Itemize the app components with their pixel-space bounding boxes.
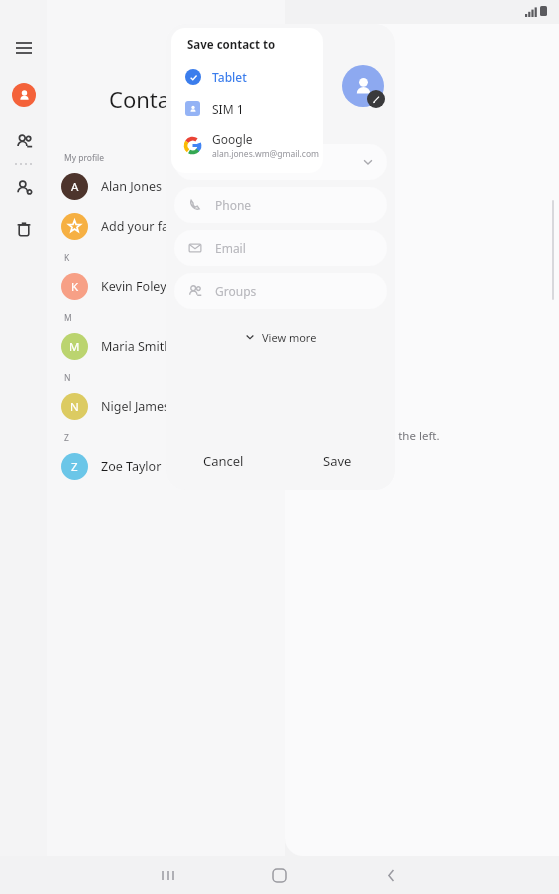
- staticText: Conta: [109, 84, 171, 114]
- staticText: My profile: [64, 152, 105, 164]
- button[interactable]: SIM 1: [171, 92, 323, 125]
- button[interactable]: K: [47, 266, 285, 306]
- button[interactable]: [174, 144, 387, 180]
- button[interactable]: N: [47, 386, 285, 426]
- staticText: Add your favou: [101, 218, 191, 235]
- staticText: Maria Smith: [101, 338, 173, 355]
- staticText: Tablet: [212, 69, 247, 85]
- staticText: K: [71, 279, 79, 295]
- button[interactable]: Email: [174, 230, 387, 266]
- button[interactable]: Trash: [4, 209, 44, 249]
- button[interactable]: Recents: [111, 856, 223, 894]
- button[interactable]: Phone: [174, 187, 387, 223]
- staticText: M: [69, 339, 80, 355]
- staticText: N: [64, 372, 71, 384]
- button[interactable]: M: [47, 326, 285, 366]
- staticText: Save: [323, 452, 352, 470]
- button[interactable]: Add your favou: [47, 206, 285, 246]
- staticText: Nigel Jameson: [101, 398, 186, 415]
- button[interactable]: Save: [280, 444, 395, 478]
- staticText: Cancel: [203, 452, 244, 470]
- staticText: Groups: [215, 283, 257, 299]
- staticText: alan.jones.wm@gmail.com: [212, 148, 320, 160]
- staticText: Alan Jones: [101, 178, 162, 195]
- staticText: N: [70, 399, 79, 415]
- staticText: ct from the list on the left.: [300, 428, 440, 444]
- button[interactable]: Google: [171, 125, 323, 165]
- button[interactable]: Cancel: [166, 444, 280, 478]
- staticText: A: [71, 179, 79, 195]
- button[interactable]: Back: [335, 856, 447, 894]
- staticText: Zoe Taylor: [101, 458, 162, 475]
- button[interactable]: Photo: [342, 65, 384, 107]
- button[interactable]: Menu: [0, 24, 47, 71]
- staticText: Z: [71, 459, 78, 475]
- button[interactable]: Add contact: [4, 167, 44, 207]
- staticText: M: [64, 312, 72, 324]
- button[interactable]: Contacts: [12, 83, 36, 107]
- staticText: Google: [212, 131, 253, 147]
- button[interactable]: Z: [47, 446, 285, 486]
- button[interactable]: Groups: [4, 121, 44, 161]
- staticText: Email: [215, 240, 246, 256]
- staticText: Z: [64, 432, 69, 444]
- staticText: View more: [262, 330, 317, 345]
- button[interactable]: Edit photo: [367, 90, 385, 108]
- button[interactable]: View more: [166, 325, 395, 349]
- staticText: Save contact to: [187, 37, 276, 53]
- button[interactable]: A: [47, 166, 285, 206]
- staticText: Phone: [215, 197, 252, 213]
- button[interactable]: Home: [223, 856, 335, 894]
- staticText: Kevin Foley: [101, 278, 167, 295]
- staticText: K: [64, 252, 70, 264]
- staticText: SIM 1: [212, 101, 244, 117]
- button[interactable]: Groups: [174, 273, 387, 309]
- button[interactable]: Tablet: [171, 61, 323, 92]
